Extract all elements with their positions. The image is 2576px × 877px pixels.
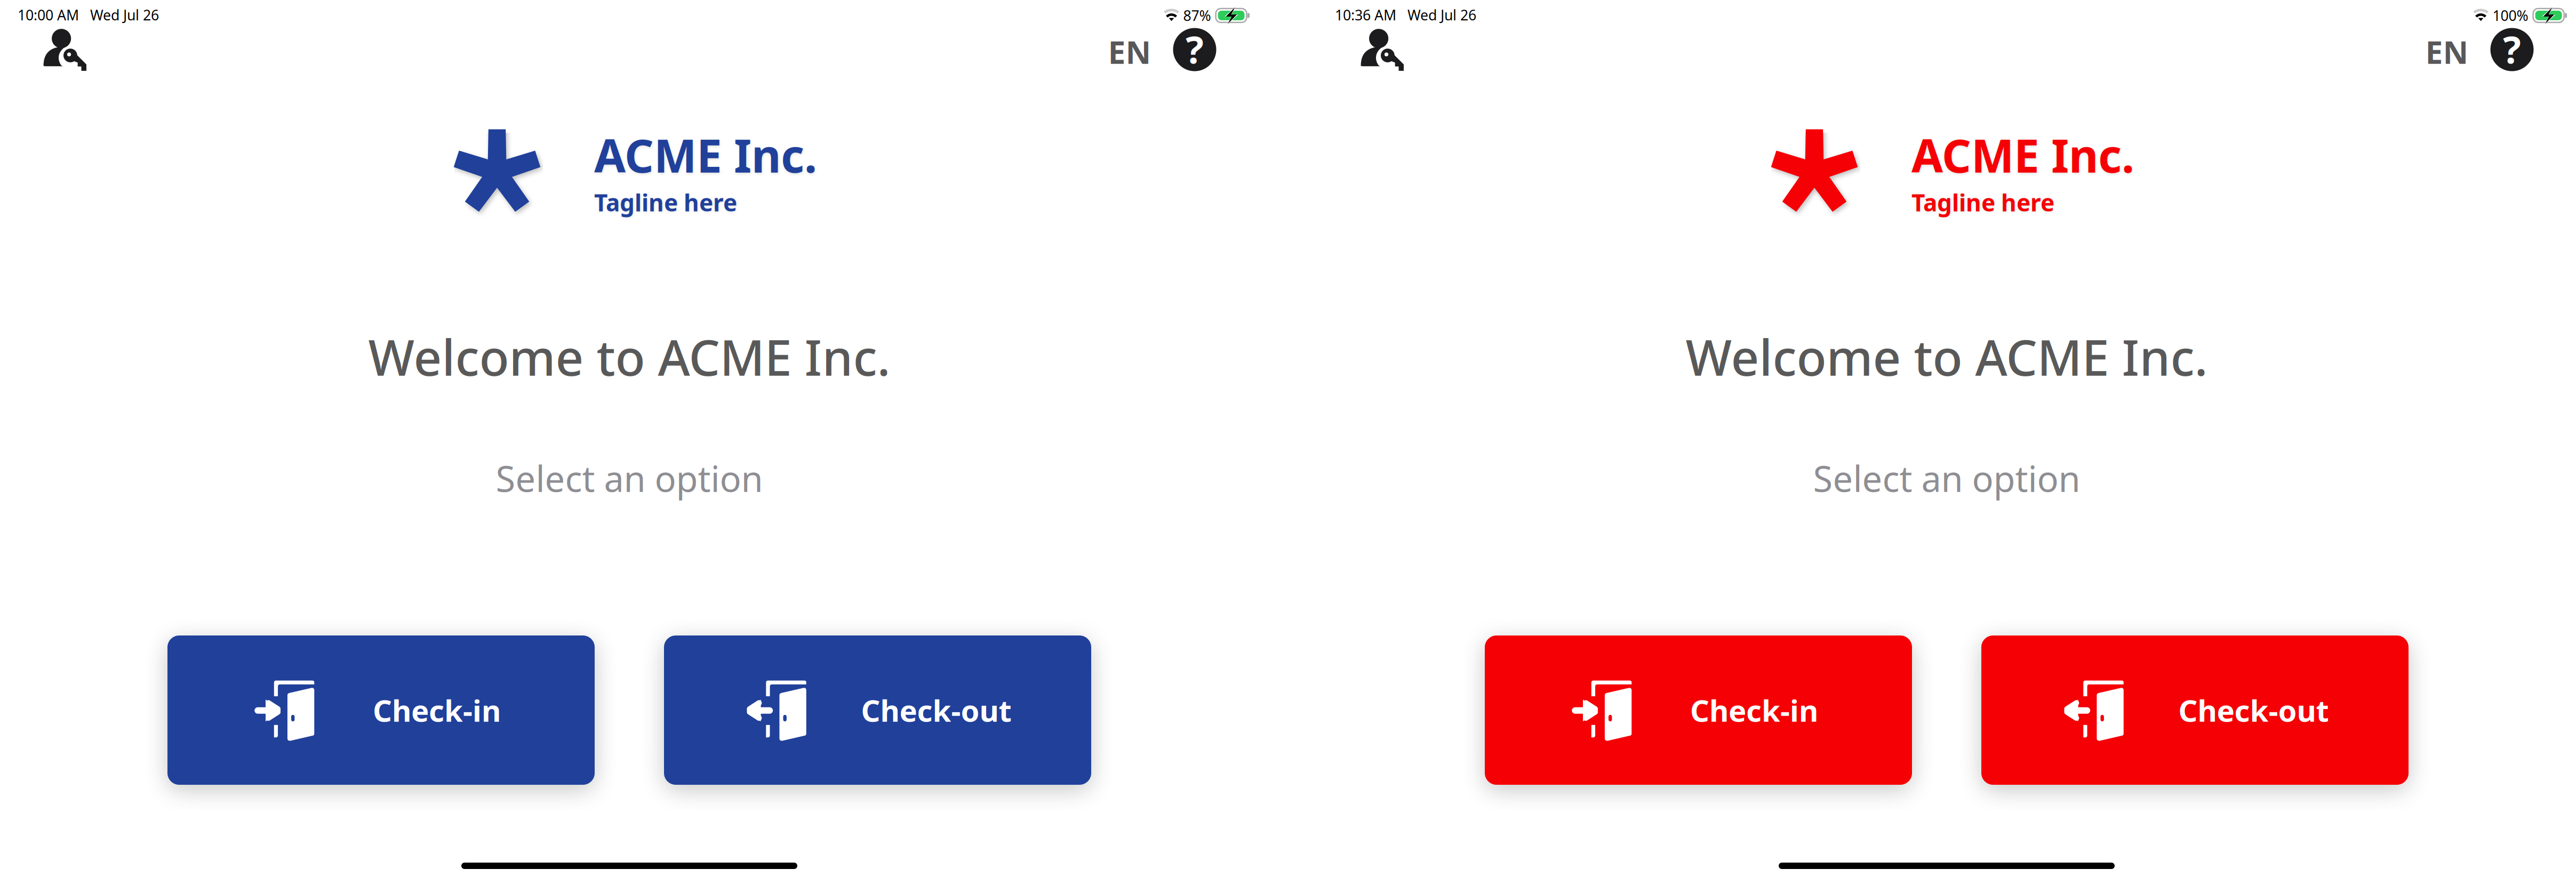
button[interactable]: Account: [31, 17, 99, 81]
button[interactable]: Check-in: [1485, 635, 1912, 785]
staticText: 10:00 AM Wed Jul 26: [18, 5, 159, 24]
staticText: Welcome to ACME Inc.: [368, 324, 890, 389]
button[interactable]: Check-out: [664, 635, 1091, 785]
staticText: Tagline here: [594, 187, 737, 218]
staticText: Select an option: [1813, 455, 2080, 502]
staticText: Check-in: [373, 690, 501, 730]
button[interactable]: Help: [1163, 18, 1226, 81]
staticText: ?: [2503, 24, 2521, 74]
staticText: 10:36 AM Wed Jul 26: [1335, 5, 1476, 24]
staticText: ACME Inc.: [1911, 125, 2134, 185]
button[interactable]: Language: EN: [2418, 22, 2476, 81]
button[interactable]: Check-out: [1981, 635, 2409, 785]
button[interactable]: Check-in: [167, 635, 595, 785]
staticText: 87%: [1183, 6, 1211, 25]
staticText: EN: [1108, 31, 1151, 72]
button[interactable]: Help: [2481, 18, 2543, 81]
staticText: ?: [1186, 24, 1204, 74]
button[interactable]: Language: EN: [1100, 22, 1159, 81]
staticText: Welcome to ACME Inc.: [1686, 324, 2208, 389]
button[interactable]: Account: [1348, 17, 1417, 81]
staticText: Check-in: [1690, 690, 1818, 730]
staticText: Tagline here: [1911, 187, 2054, 218]
staticText: 100%: [2493, 6, 2528, 25]
staticText: Check-out: [861, 690, 1011, 730]
staticText: ACME Inc.: [594, 125, 817, 185]
staticText: Check-out: [2178, 690, 2329, 730]
staticText: EN: [2425, 31, 2469, 72]
staticText: Select an option: [496, 455, 763, 502]
